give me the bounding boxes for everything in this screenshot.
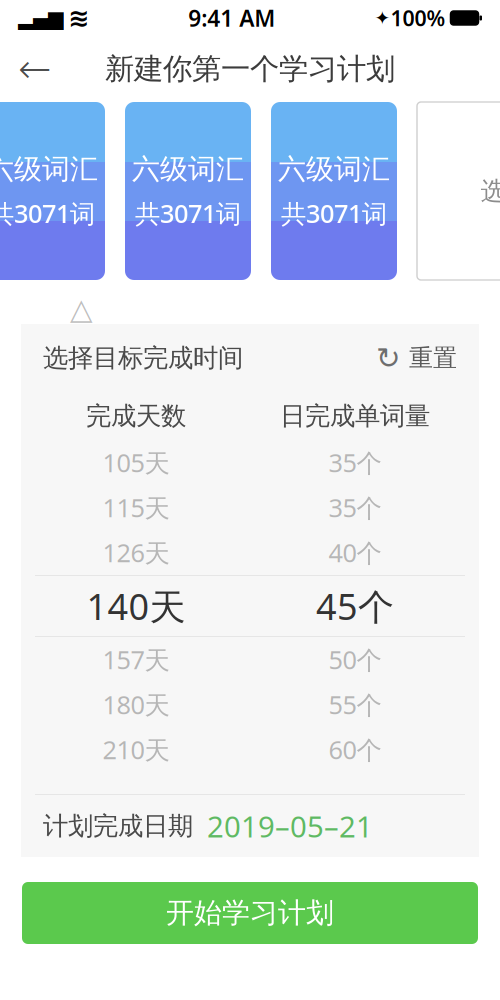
button[interactable]: 126天 bbox=[21, 530, 479, 575]
button[interactable]: ↻ bbox=[376, 341, 457, 375]
staticText: 210天 bbox=[102, 733, 169, 766]
staticText: 180天 bbox=[102, 688, 169, 721]
staticText: 六级词汇 bbox=[0, 152, 98, 186]
staticText: 105天 bbox=[102, 446, 169, 479]
button[interactable]: 115天 bbox=[21, 485, 479, 530]
button[interactable]: 157天 bbox=[21, 637, 479, 682]
staticText: 35个 bbox=[328, 491, 381, 524]
staticText: 选择目标完成时间 bbox=[43, 342, 243, 373]
staticText: 157天 bbox=[102, 643, 169, 676]
button[interactable]: Back bbox=[8, 42, 62, 96]
staticText: 共3071词 bbox=[281, 196, 387, 230]
staticText: 完成天数 bbox=[86, 400, 186, 431]
staticText: 重置 bbox=[409, 343, 457, 373]
staticText: 115天 bbox=[102, 491, 169, 524]
staticText: 开始学习计划 bbox=[166, 896, 334, 930]
staticText: ✦ bbox=[374, 7, 390, 29]
button[interactable]: 选择词书 bbox=[417, 102, 500, 280]
staticText: 2019–05–21 bbox=[207, 806, 373, 845]
button[interactable]: 105天 bbox=[21, 440, 479, 485]
button[interactable]: 六级词汇 bbox=[125, 102, 251, 280]
staticText: 选 bbox=[480, 175, 500, 206]
staticText: 50个 bbox=[328, 643, 381, 676]
staticText: ↻ bbox=[376, 341, 401, 375]
staticText: 60个 bbox=[328, 733, 381, 766]
staticText: 45个 bbox=[316, 582, 394, 630]
staticText: 55个 bbox=[328, 688, 381, 721]
staticText: 新建你第一个学习计划 bbox=[105, 51, 395, 87]
staticText: ≋ bbox=[68, 4, 89, 32]
staticText: 35个 bbox=[328, 446, 381, 479]
staticText: 9:41 AM bbox=[188, 3, 275, 33]
button[interactable]: 开始学习计划 bbox=[22, 882, 478, 944]
staticText: 共3071词 bbox=[135, 196, 241, 230]
staticText: 六级词汇 bbox=[132, 152, 244, 186]
button[interactable]: 210天 bbox=[21, 727, 479, 772]
staticText: 共3071词 bbox=[0, 196, 95, 230]
staticText: ← bbox=[18, 46, 52, 92]
staticText: ▂▄▆ bbox=[18, 7, 63, 29]
staticText: 计划完成日期 bbox=[43, 810, 193, 841]
staticText: 六级词汇 bbox=[278, 152, 390, 186]
button[interactable]: 180天 bbox=[21, 682, 479, 727]
button[interactable]: 六级词汇 bbox=[0, 102, 105, 280]
staticText bbox=[63, 6, 68, 29]
staticText: 100% bbox=[390, 4, 445, 32]
button[interactable]: 六级词汇 bbox=[271, 102, 397, 280]
staticText: 40个 bbox=[328, 536, 381, 569]
staticText: 126天 bbox=[102, 536, 169, 569]
staticText: 日完成单词量 bbox=[280, 400, 430, 431]
staticText: 140天 bbox=[86, 582, 185, 630]
staticText: △ bbox=[70, 292, 93, 326]
